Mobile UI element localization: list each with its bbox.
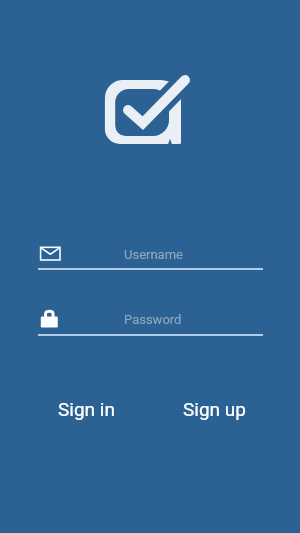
button[interactable]: Username <box>0 234 300 274</box>
staticText: Username <box>124 247 183 262</box>
button[interactable]: Sign up <box>171 390 258 428</box>
staticText: Sign up <box>183 398 246 420</box>
staticText: Password <box>124 312 182 327</box>
button[interactable]: Password <box>0 297 300 337</box>
staticText: Sign in <box>58 398 115 420</box>
other: Password <box>39 309 61 331</box>
button[interactable]: Sign in <box>46 390 127 428</box>
other: Username <box>39 246 61 268</box>
